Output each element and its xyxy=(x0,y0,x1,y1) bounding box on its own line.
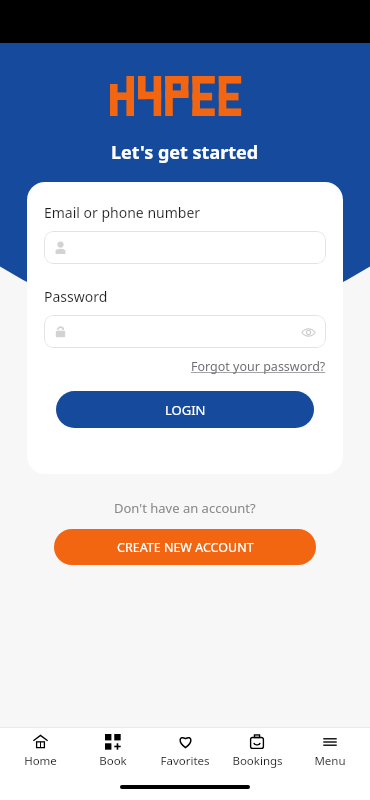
staticText: Menu xyxy=(314,753,346,769)
button[interactable]: Home xyxy=(8,730,72,772)
button[interactable]: LOGIN xyxy=(56,391,314,428)
button[interactable]: Bookings xyxy=(225,731,289,772)
staticText: Book xyxy=(99,753,127,769)
staticText: Forgot your password? xyxy=(191,358,326,375)
staticText: Email or phone number xyxy=(44,203,201,222)
staticText: CREATE NEW ACCOUNT xyxy=(117,539,254,556)
button[interactable]: Menu xyxy=(298,731,362,772)
staticText: Favorites xyxy=(160,753,210,769)
button[interactable]: Forgot your password? xyxy=(191,358,326,375)
button[interactable]: Show password xyxy=(44,315,326,348)
staticText: Let's get started xyxy=(111,140,259,165)
staticText: Bookings xyxy=(232,753,283,769)
button[interactable]: Book xyxy=(81,731,145,772)
button[interactable] xyxy=(44,231,326,264)
staticText: LOGIN xyxy=(165,401,206,419)
staticText: Password xyxy=(44,287,108,306)
button[interactable]: CREATE NEW ACCOUNT xyxy=(54,529,316,565)
button[interactable]: Favorites xyxy=(153,730,217,772)
staticText: Home xyxy=(24,753,57,769)
button[interactable]: Show password xyxy=(300,324,316,340)
staticText: Don't have an account? xyxy=(114,499,256,517)
